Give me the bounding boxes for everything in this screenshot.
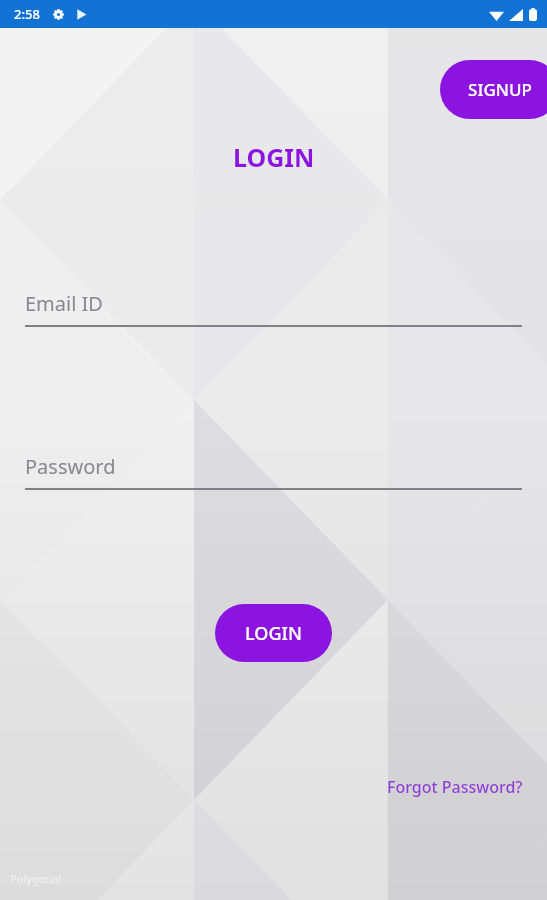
staticText: LOGIN — [233, 140, 315, 174]
staticText: LOGIN — [245, 621, 302, 646]
staticText: Polygonal — [10, 871, 61, 886]
staticText: Forgot Password? — [387, 776, 523, 798]
button[interactable]: Password — [25, 453, 522, 490]
staticText: Password — [25, 453, 116, 480]
button[interactable]: Email ID — [25, 290, 522, 327]
staticText: SIGNUP — [468, 78, 532, 101]
button[interactable]: LOGIN — [215, 604, 332, 662]
button[interactable]: Forgot Password? — [363, 770, 547, 804]
button[interactable]: SIGNUP — [440, 60, 547, 119]
staticText: 2:58 — [14, 5, 40, 23]
staticText: Email ID — [25, 290, 103, 317]
